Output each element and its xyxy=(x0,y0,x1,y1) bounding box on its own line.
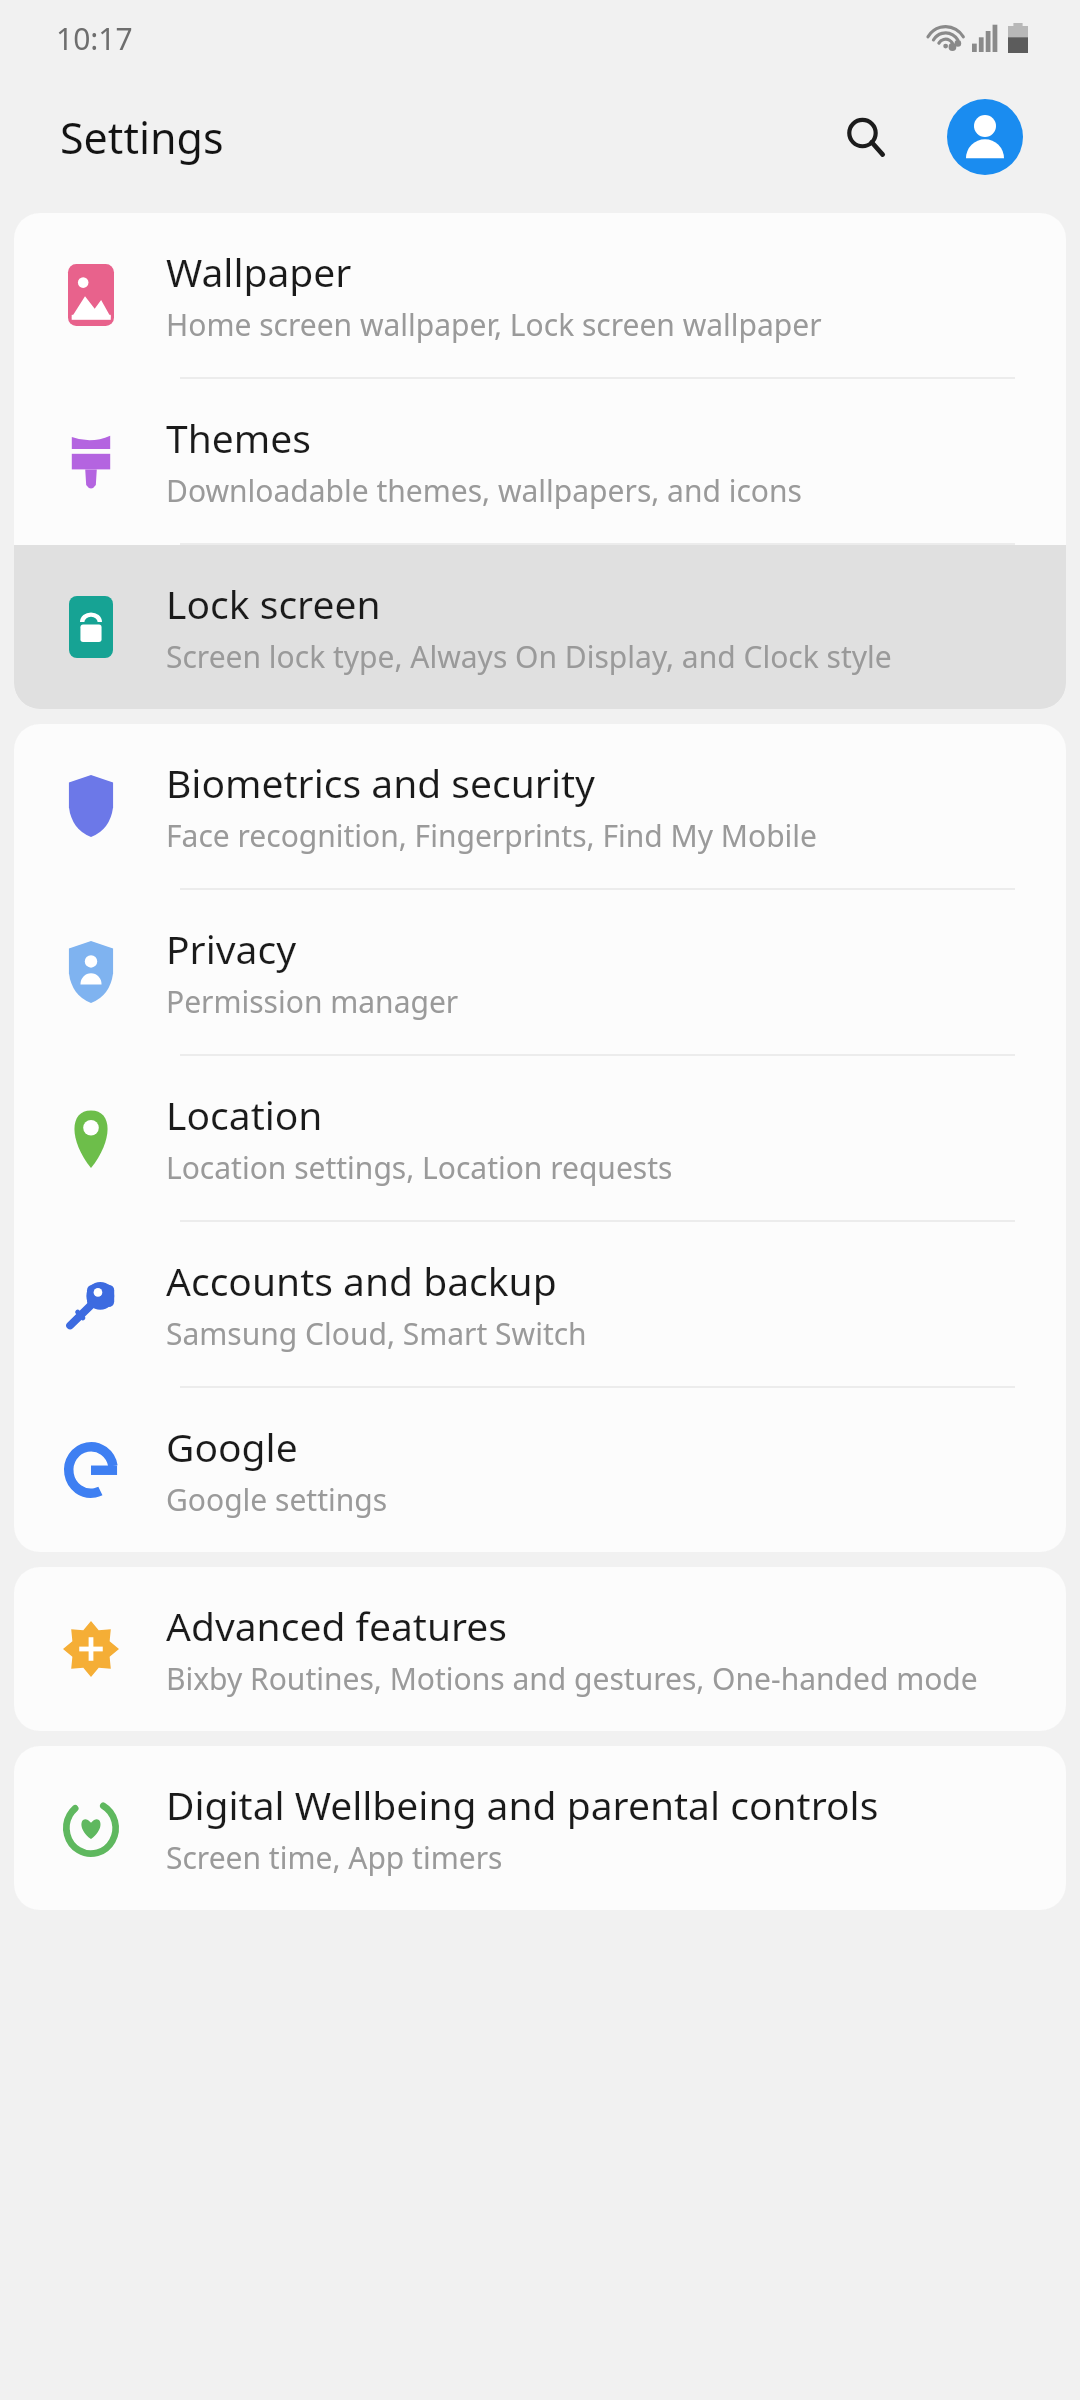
staticText: Home screen wallpaper, Lock screen wallp… xyxy=(166,304,822,345)
staticText: Biometrics and security xyxy=(166,756,596,809)
staticText: 10:17 xyxy=(56,18,133,59)
staticText: Lock screen xyxy=(166,577,381,630)
button[interactable]: Lock screen xyxy=(14,545,1066,709)
button[interactable]: Privacy xyxy=(14,890,1066,1056)
button[interactable]: Accounts and backup xyxy=(14,1222,1066,1388)
staticText: Themes xyxy=(166,411,311,464)
staticText: Face recognition, Fingerprints, Find My … xyxy=(166,815,817,856)
staticText: Google settings xyxy=(166,1479,388,1520)
button[interactable]: Wallpaper xyxy=(14,213,1066,379)
staticText: Google xyxy=(166,1420,298,1473)
button[interactable]: Biometrics and security xyxy=(14,724,1066,890)
staticText: Advanced features xyxy=(166,1599,508,1652)
button[interactable]: Digital Wellbeing and parental controls xyxy=(14,1746,1066,1910)
staticText: Downloadable themes, wallpapers, and ico… xyxy=(166,470,802,511)
staticText: Permission manager xyxy=(166,981,459,1022)
staticText: Location xyxy=(166,1088,323,1141)
button[interactable]: Location xyxy=(14,1056,1066,1222)
button[interactable]: Advanced features xyxy=(14,1567,1066,1731)
staticText: Bixby Routines, Motions and gestures, On… xyxy=(166,1658,978,1699)
staticText: Accounts and backup xyxy=(166,1254,557,1307)
button[interactable]: Google xyxy=(14,1388,1066,1552)
staticText: Digital Wellbeing and parental controls xyxy=(166,1778,879,1831)
button[interactable]: Themes xyxy=(14,379,1066,545)
button[interactable]: Search xyxy=(828,99,904,175)
staticText: Screen time, App timers xyxy=(166,1837,503,1878)
staticText: Screen lock type, Always On Display, and… xyxy=(166,636,892,677)
button[interactable]: Account xyxy=(946,98,1024,176)
staticText: Privacy xyxy=(166,922,297,975)
staticText: Samsung Cloud, Smart Switch xyxy=(166,1313,587,1354)
staticText: Wallpaper xyxy=(166,245,352,298)
staticText: Location settings, Location requests xyxy=(166,1147,673,1188)
staticText: Settings xyxy=(60,108,224,167)
